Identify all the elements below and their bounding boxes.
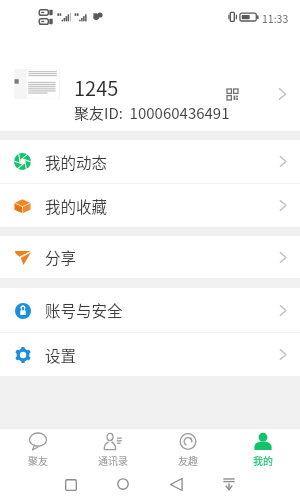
button[interactable]: 账号与安全: [0, 288, 300, 332]
staticText: 1245: [74, 73, 119, 102]
button[interactable]: Hide keyboard: [217, 474, 241, 500]
staticText: 11:33: [262, 11, 289, 26]
button[interactable]: 1245: [0, 26, 300, 131]
staticText: 通讯录: [98, 453, 128, 467]
staticText: 聚友: [28, 453, 48, 467]
button[interactable]: 我的收藏: [0, 184, 300, 227]
staticText: 分享: [45, 246, 77, 268]
button[interactable]: 友趣: [150, 429, 225, 474]
button[interactable]: 聚友: [0, 429, 75, 474]
button[interactable]: 我的: [225, 429, 300, 474]
button[interactable]: 扫一扫二维码: [220, 82, 245, 107]
button[interactable]: Home: [111, 474, 135, 500]
staticText: 友趣: [178, 453, 198, 467]
button[interactable]: 设置: [0, 333, 300, 376]
staticText: 聚友ID: 100060436491: [74, 102, 230, 124]
staticText: 我的: [253, 453, 273, 467]
staticText: 账号与安全: [45, 299, 123, 321]
staticText: 我的收藏: [45, 195, 108, 217]
staticText: 我的动态: [45, 151, 108, 173]
button[interactable]: 通讯录: [75, 429, 150, 474]
button[interactable]: Recents: [59, 474, 83, 500]
button[interactable]: Back: [164, 474, 188, 500]
button[interactable]: 分享: [0, 236, 300, 278]
button[interactable]: 我的动态: [0, 140, 300, 183]
staticText: 设置: [45, 344, 77, 366]
